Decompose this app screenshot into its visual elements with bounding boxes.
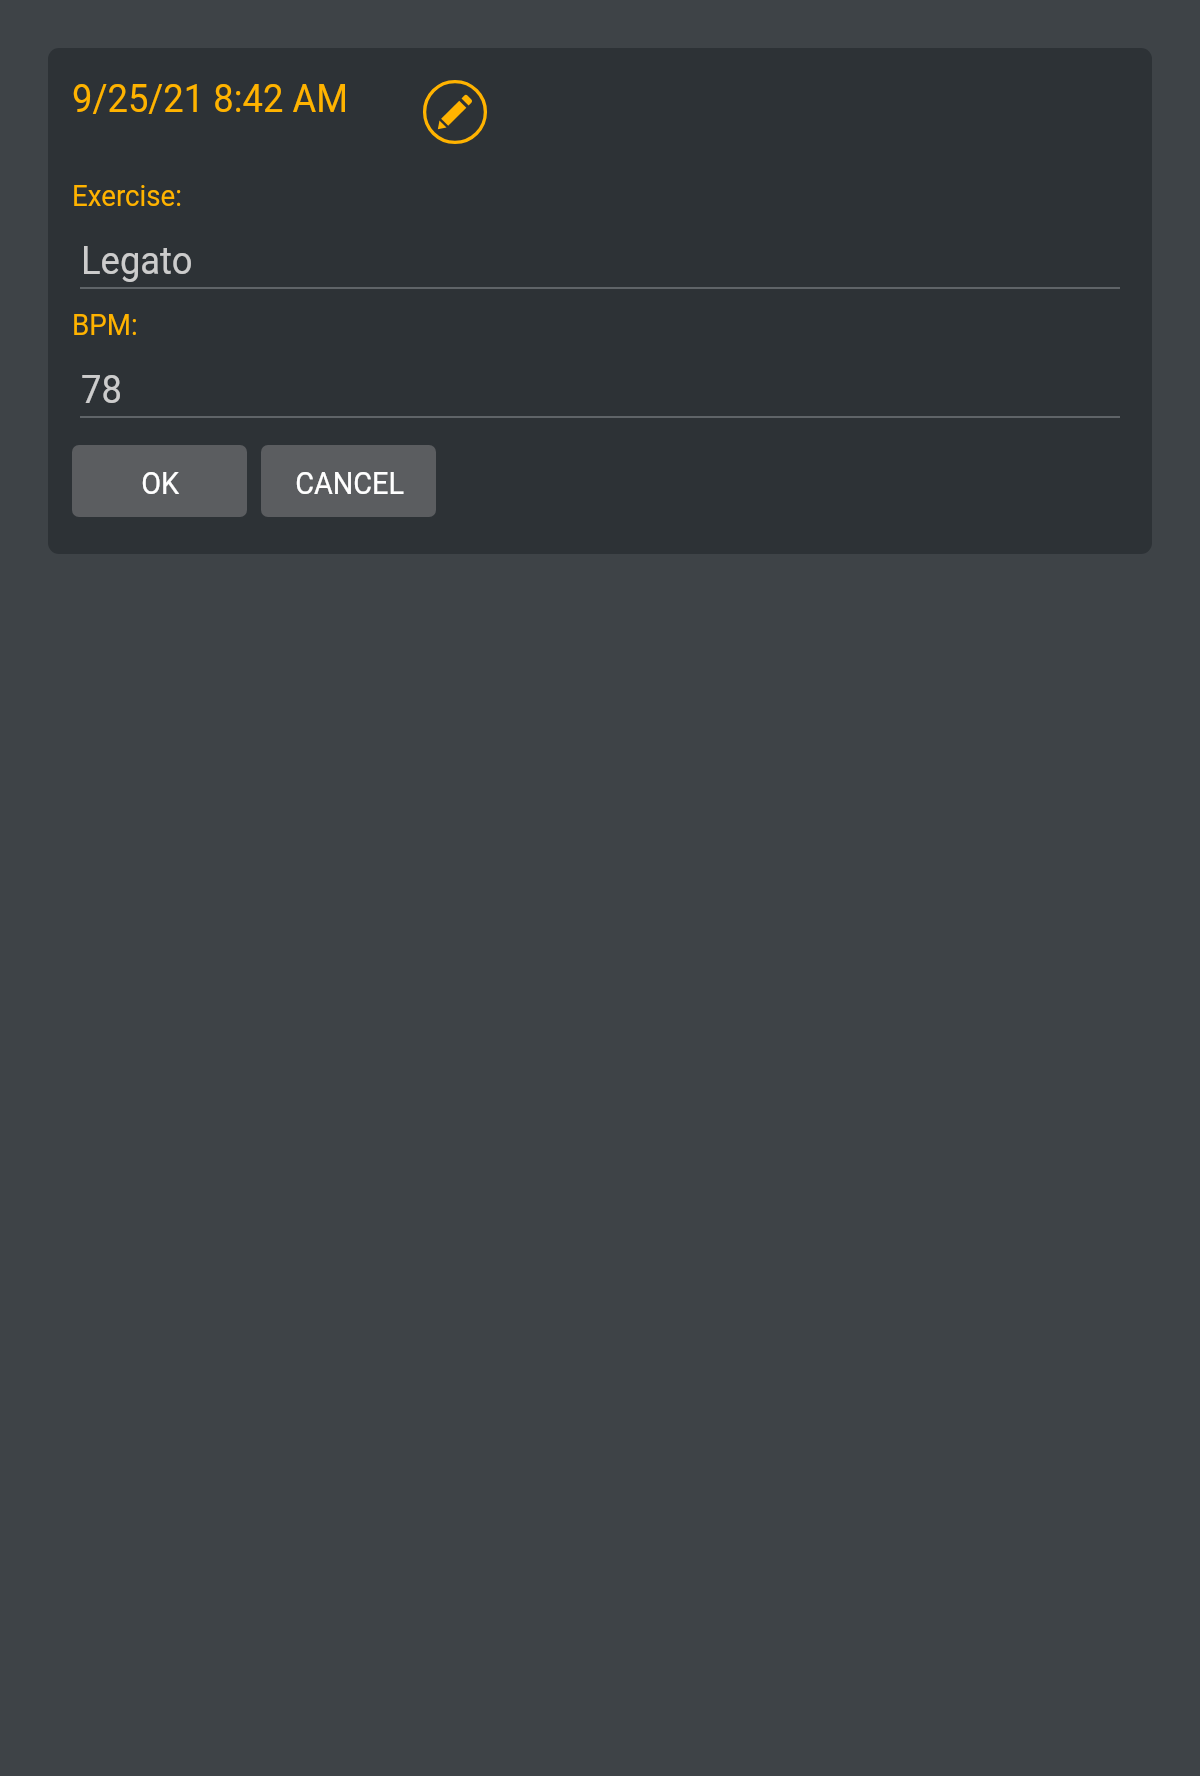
button[interactable]: Edit entry bbox=[419, 76, 491, 148]
staticText: 78 bbox=[81, 367, 123, 412]
button[interactable]: OK bbox=[72, 445, 247, 517]
staticText: BPM: bbox=[72, 308, 138, 342]
staticText: 9/25/21 8:42 AM bbox=[72, 76, 349, 121]
staticText: CANCEL bbox=[295, 466, 405, 502]
staticText: Exercise: bbox=[72, 179, 183, 213]
button[interactable]: CANCEL bbox=[261, 445, 436, 517]
staticText: OK bbox=[141, 466, 180, 502]
staticText: Legato bbox=[81, 238, 192, 283]
